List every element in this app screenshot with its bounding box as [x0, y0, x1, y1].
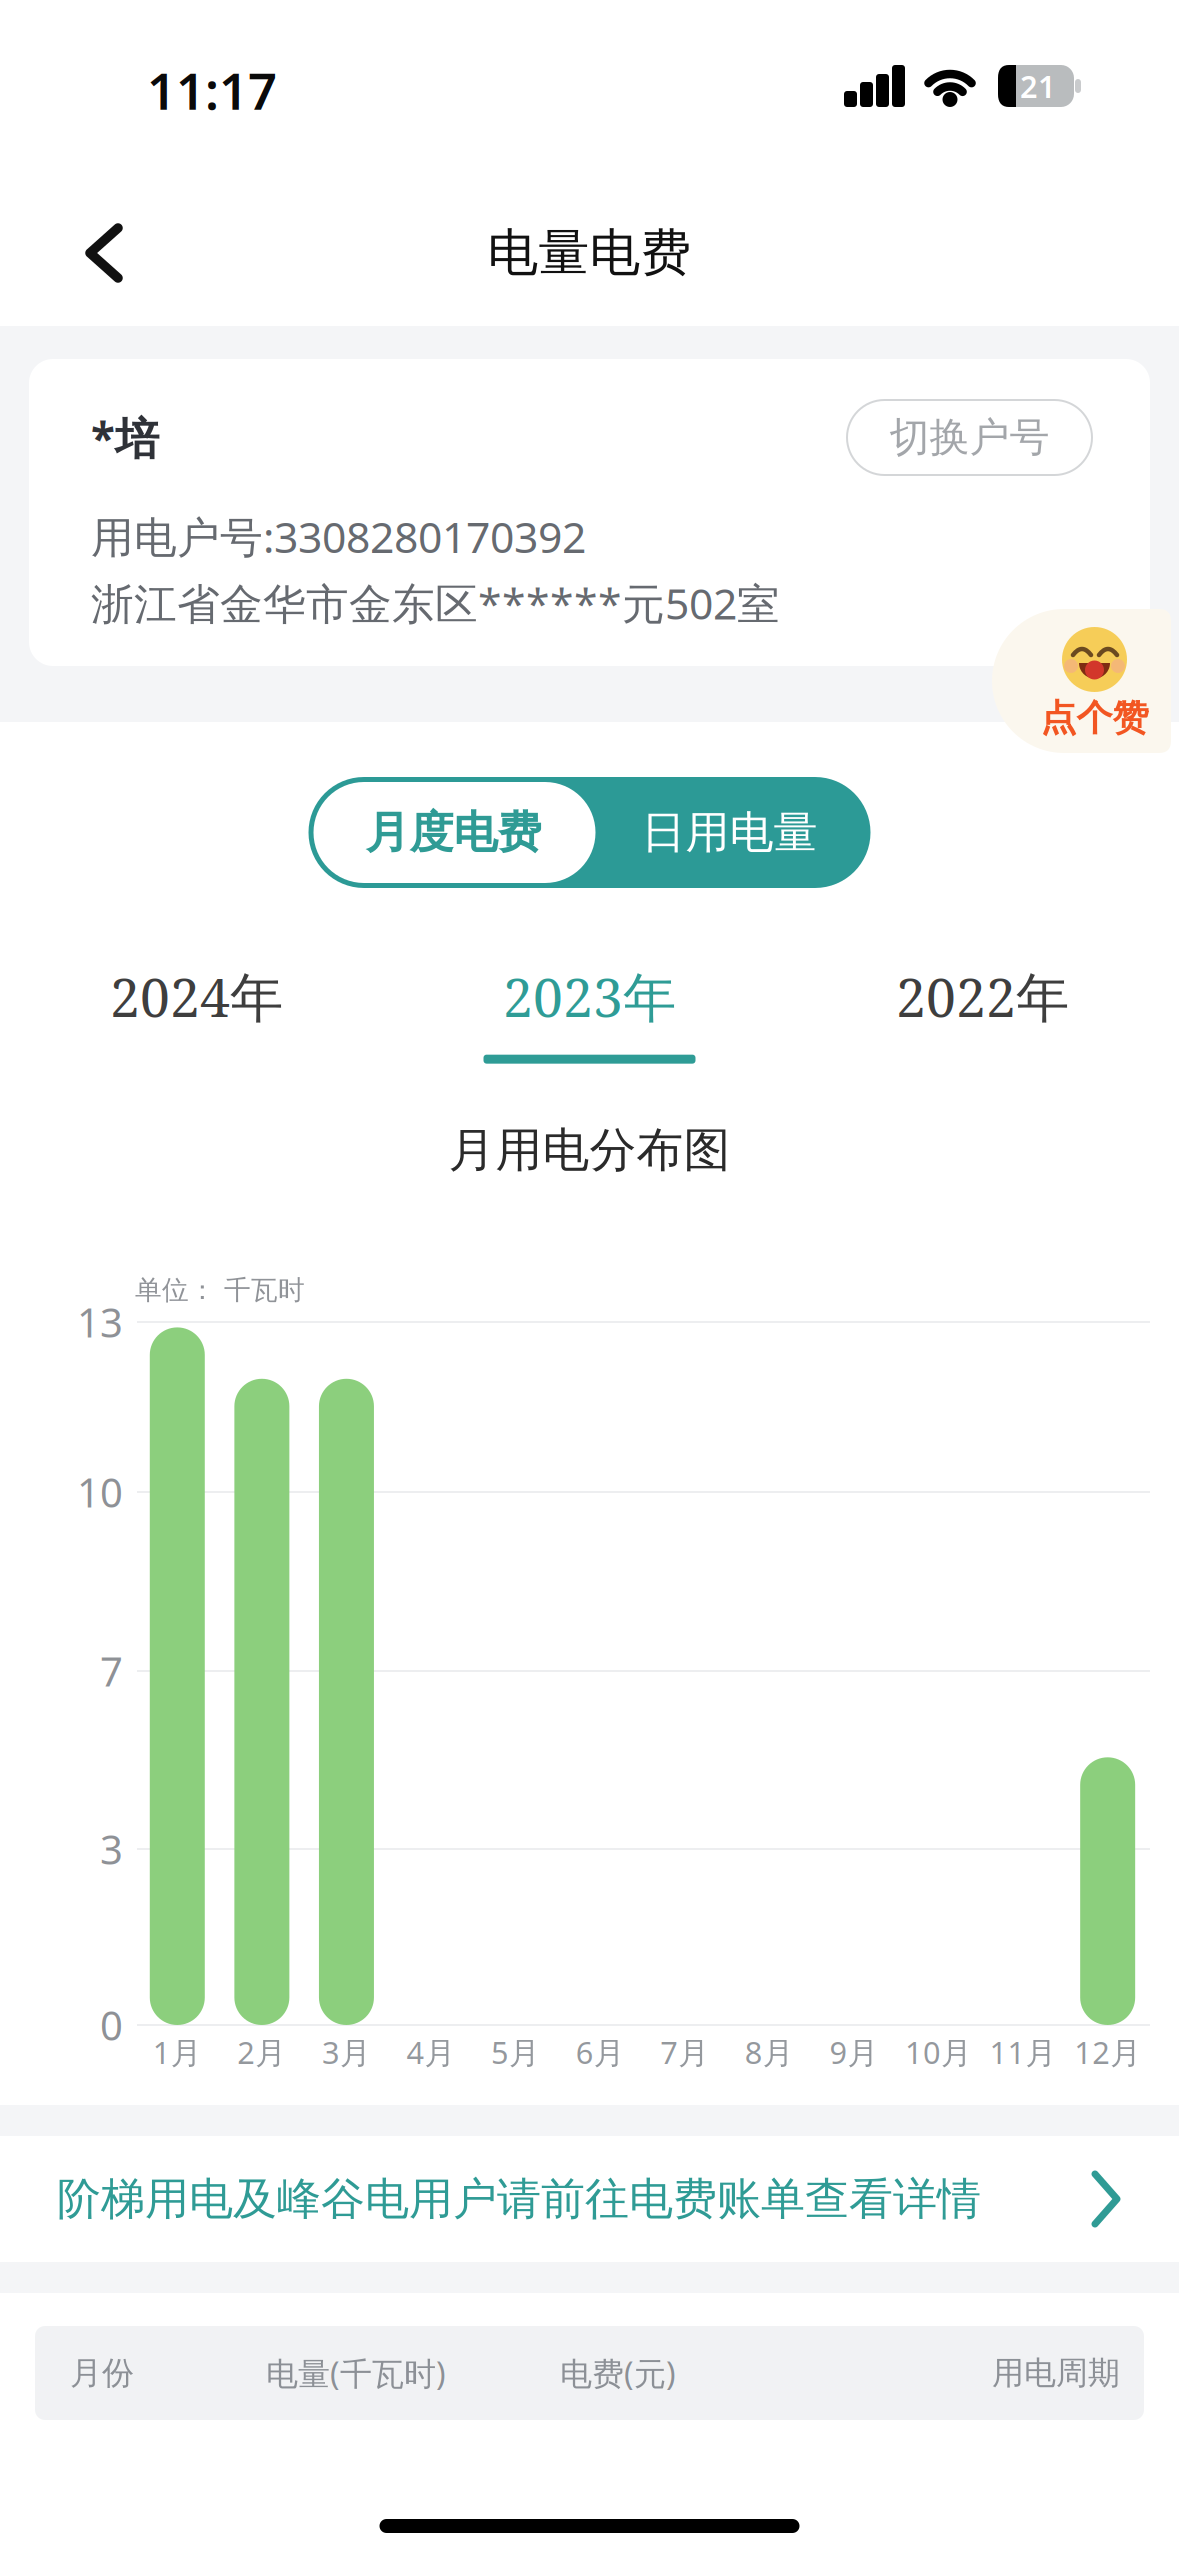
staticText: 0 — [100, 1998, 123, 2051]
staticText: 2月 — [237, 2032, 286, 2072]
staticText: 10月 — [905, 2032, 972, 2072]
staticText: 3月 — [322, 2032, 371, 2072]
staticText: 用电周期 — [992, 2353, 1120, 2393]
staticText: 月度电费 — [365, 805, 541, 859]
staticText: 11月 — [990, 2032, 1057, 2072]
staticText: *培 — [91, 408, 159, 467]
staticText: 13 — [77, 1295, 123, 1348]
button[interactable]: 2022年 — [786, 960, 1179, 1033]
staticText: 阶梯用电及峰谷电用户请前往电费账单查看详情 — [57, 2172, 981, 2226]
staticText: 2024年 — [110, 960, 283, 1033]
staticText: 10 — [77, 1465, 123, 1518]
staticText: 1月 — [153, 2032, 202, 2072]
staticText: 8月 — [745, 2032, 794, 2072]
staticText: 21 — [1020, 66, 1056, 106]
staticText: 12月 — [1074, 2032, 1141, 2072]
staticText: 6月 — [576, 2032, 625, 2072]
staticText: 浙江省金华市金东区******元502室 — [91, 575, 780, 631]
staticText: 7月 — [660, 2032, 709, 2072]
staticText: 月份 — [70, 2353, 134, 2393]
staticText: 用电户号:3308280170392 — [91, 508, 586, 565]
staticText: 电量(千瓦时) — [266, 2352, 446, 2394]
staticText: 电费(元) — [560, 2352, 676, 2394]
button[interactable]: 2024年 — [0, 960, 393, 1033]
button[interactable]: Back — [60, 211, 180, 295]
staticText: 9月 — [829, 2032, 878, 2072]
staticText: 7 — [100, 1644, 123, 1697]
button[interactable]: 2023年 — [393, 960, 786, 1033]
button[interactable]: 日用电量 — [594, 780, 864, 885]
button[interactable]: 阶梯用电及峰谷电用户请前往电费账单查看详情 — [0, 2136, 1179, 2262]
staticText: 电量电费 — [487, 222, 691, 284]
staticText: 2023年 — [503, 960, 676, 1033]
staticText: 月用电分布图 — [448, 1122, 730, 1179]
button[interactable]: 切换户号 — [847, 400, 1092, 475]
staticText: 5月 — [491, 2032, 540, 2072]
staticText: 单位： 千瓦时 — [135, 1274, 305, 1306]
button[interactable]: 点个赞 — [1000, 609, 1171, 753]
staticText: 2022年 — [896, 960, 1069, 1033]
staticText: 4月 — [406, 2032, 455, 2072]
staticText: 11:17 — [147, 56, 277, 124]
staticText: 日用电量 — [641, 805, 817, 859]
staticText: 3 — [100, 1822, 123, 1875]
staticText: 点个赞 — [1040, 696, 1148, 740]
staticText: 切换户号 — [889, 413, 1049, 462]
button[interactable]: 月度电费 — [311, 780, 595, 885]
